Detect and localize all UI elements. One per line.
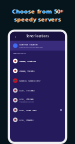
staticText: USA, Phoenix: [19, 118, 33, 121]
staticText: NORTH AMERICA: [13, 52, 26, 55]
button[interactable]: Canada, Toronto: [10, 66, 65, 76]
staticText: Canada, Toronto: [19, 69, 34, 72]
staticText: Canada, Montreal: [19, 59, 36, 63]
button[interactable]: Mexico, Mexico City: [10, 76, 65, 85]
staticText: ‹: [14, 33, 15, 39]
staticText: speedy servers: [14, 15, 61, 23]
button[interactable]: USA, Atlanta: [10, 85, 65, 95]
staticText: The fastest server right now: [19, 46, 42, 49]
staticText: Choose from 50+: [12, 7, 63, 15]
button[interactable]: USA, Chicago: [10, 95, 65, 105]
staticText: USA, Atlanta: [19, 89, 34, 92]
staticText: USA, New York: [19, 108, 36, 112]
staticText: Mexico, Mexico City: [19, 79, 40, 82]
staticText: Optimal location: [19, 43, 37, 46]
button[interactable]: USA, Phoenix: [10, 115, 65, 125]
button[interactable]: Optimal location: [10, 41, 65, 51]
button[interactable]: USA, New York: [10, 105, 65, 115]
button[interactable]: Canada, Montreal: [10, 56, 65, 66]
button[interactable]: Back: [12, 34, 17, 39]
staticText: USA, Chicago: [19, 97, 33, 100]
staticText: The closest server: [19, 101, 34, 103]
staticText: Server locations: [26, 34, 48, 38]
